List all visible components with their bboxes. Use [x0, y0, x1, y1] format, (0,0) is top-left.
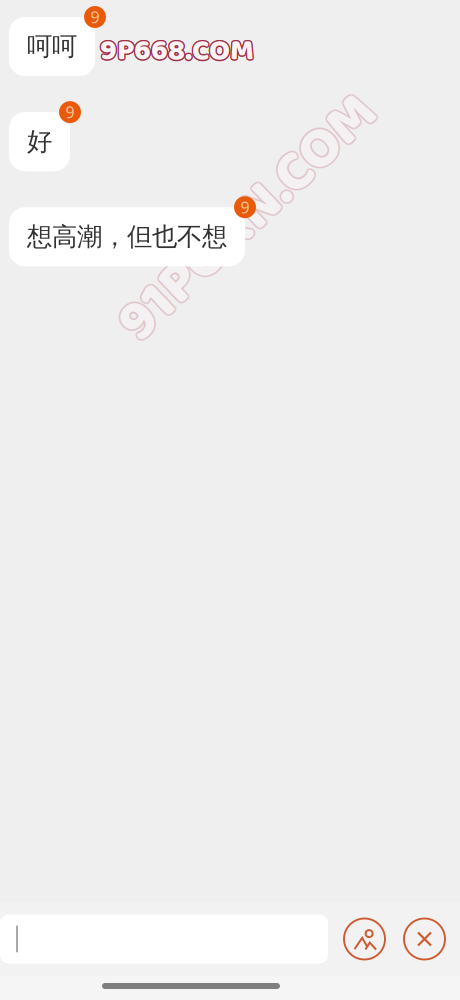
staticText: 9P668.COM	[101, 28, 255, 76]
staticText: 91PORN.COM	[83, 173, 415, 265]
staticText: 91PORN.COM	[81, 173, 413, 265]
staticText: 9	[90, 6, 99, 28]
staticText: 91PORN.COM	[81, 171, 413, 263]
staticText: 9P668.COM	[101, 27, 255, 75]
staticText: 9P668.COM	[99, 27, 253, 75]
staticText: 91PORN.COM	[82, 174, 414, 265]
staticText: 呵呵	[27, 31, 77, 62]
staticText: 91PORN.COM	[82, 172, 414, 264]
staticText: 9P668.COM	[99, 26, 253, 74]
button[interactable]: Close	[385, 918, 460, 959]
staticText: 9P668.COM	[100, 27, 254, 75]
staticText: 好	[27, 126, 52, 157]
staticText: 91PORN.COM	[84, 172, 416, 264]
button[interactable]: Photos	[328, 918, 385, 959]
staticText: 9P668.COM	[99, 28, 253, 76]
staticText: 91PORN.COM	[82, 170, 414, 262]
staticText: 91PORN.COM	[80, 172, 412, 264]
staticText: 想高潮，但也不想	[27, 221, 227, 252]
staticText: 91PORN.COM	[83, 171, 415, 263]
staticText: 9	[65, 101, 74, 123]
staticText: 9	[240, 197, 249, 218]
staticText: 9P668.COM	[101, 26, 255, 74]
staticText: 9P668.COM	[100, 28, 254, 76]
staticText: 9P668.COM	[100, 26, 254, 74]
